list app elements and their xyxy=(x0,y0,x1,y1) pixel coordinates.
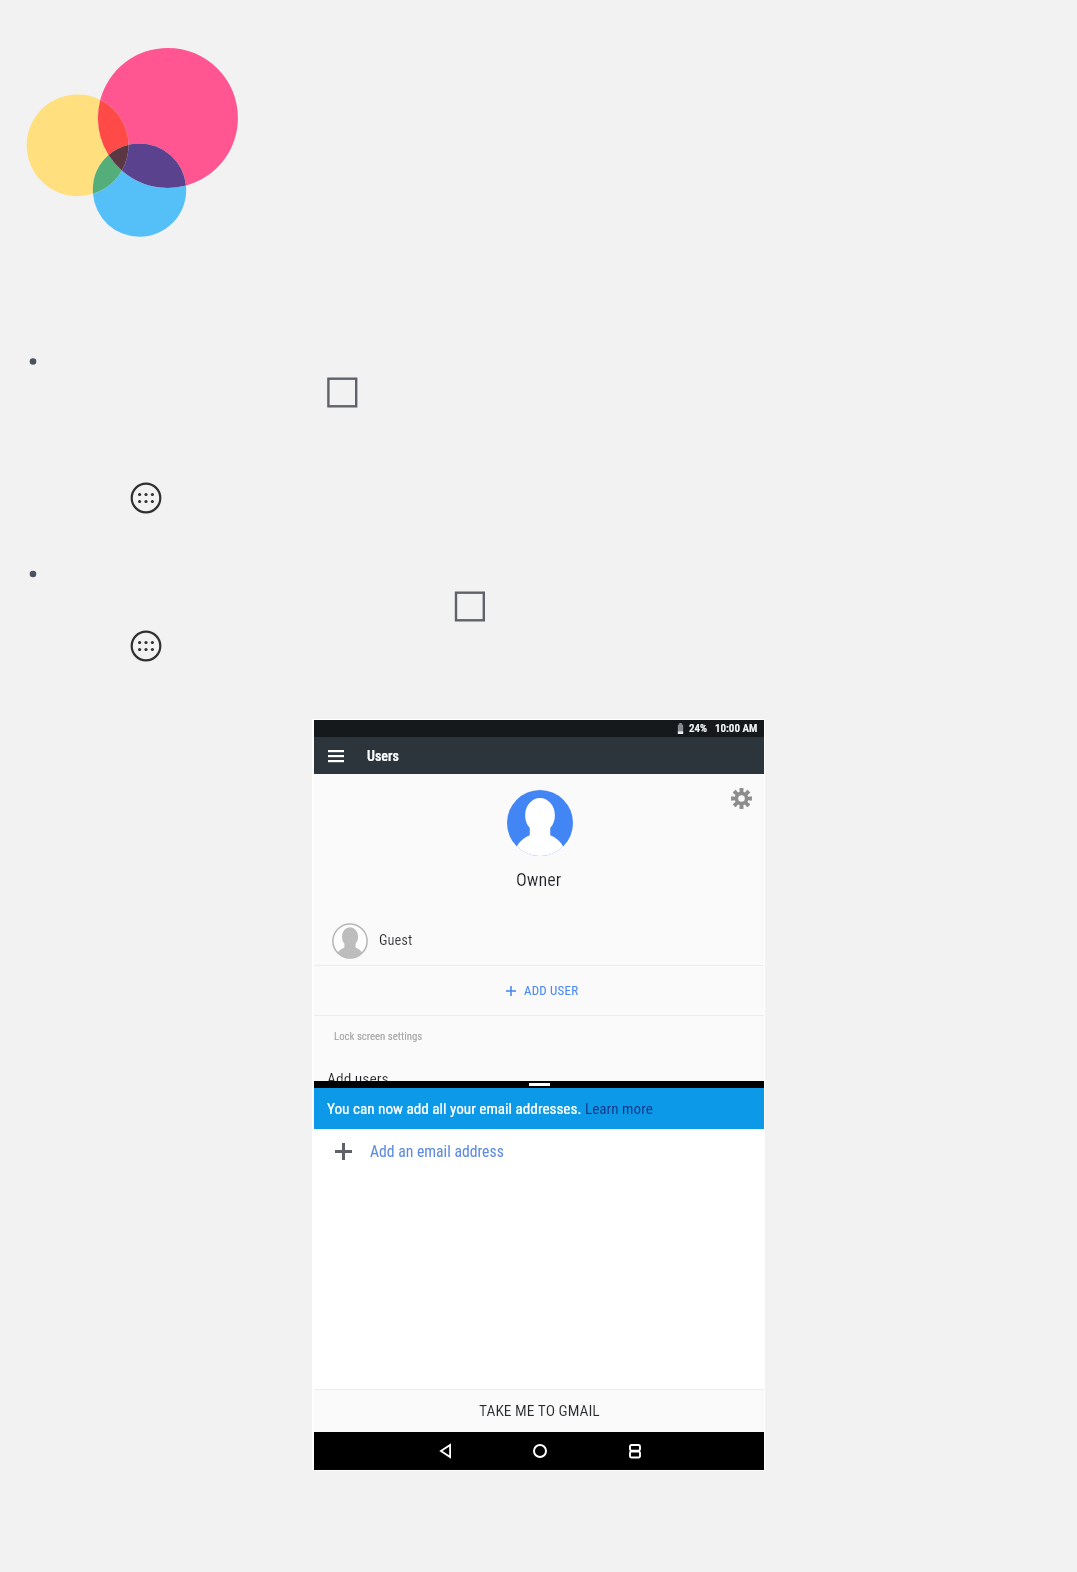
staticText: 10:00 AM xyxy=(715,722,758,735)
button[interactable]: ADD USER xyxy=(314,966,764,1015)
button[interactable]: Home xyxy=(522,1432,558,1470)
staticText: You can now add all your email addresses… xyxy=(327,1100,585,1118)
button[interactable]: Recent apps xyxy=(617,1432,653,1470)
button[interactable]: User settings xyxy=(726,783,756,813)
button[interactable]: Lock screen settings xyxy=(314,1016,764,1056)
staticText: Add an email address xyxy=(370,1142,504,1160)
button[interactable]: Back xyxy=(427,1432,463,1470)
staticText: TAKE ME TO GMAIL xyxy=(479,1402,600,1420)
button[interactable]: Add an email address xyxy=(314,1129,764,1173)
staticText: 24% xyxy=(689,722,708,735)
staticText: Lock screen settings xyxy=(334,1030,423,1043)
staticText: Guest xyxy=(379,932,413,949)
staticText: Owner xyxy=(516,869,562,890)
button[interactable]: TAKE ME TO GMAIL xyxy=(314,1390,764,1432)
staticText: ADD USER xyxy=(524,983,579,998)
staticText: Users xyxy=(367,748,399,764)
button[interactable]: Open navigation menu xyxy=(322,742,350,770)
button[interactable]: Learn more xyxy=(585,1100,653,1118)
staticText: Add users xyxy=(327,1070,389,1088)
button[interactable]: Guest xyxy=(314,914,764,967)
